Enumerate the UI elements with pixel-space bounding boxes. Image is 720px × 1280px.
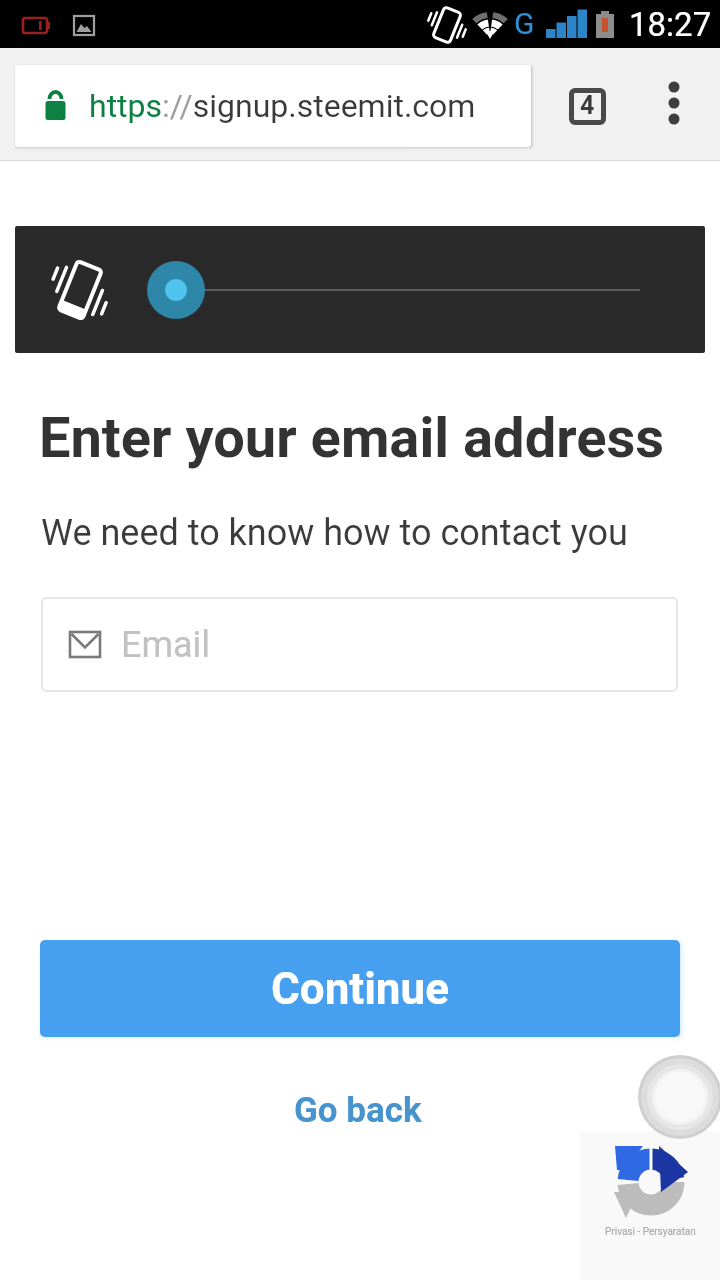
button[interactable]: Tabs, 4 open — [569, 88, 606, 125]
staticText: G — [514, 6, 535, 41]
staticText: 4 — [580, 91, 595, 120]
staticText: https://signup.steemit.com — [89, 87, 476, 125]
button[interactable]: Email — [41, 597, 678, 692]
button[interactable]: Privasi - Persyaratan — [580, 1131, 720, 1280]
staticText: Continue — [271, 963, 449, 1015]
button[interactable]: Ringer mode: vibrate — [15, 226, 705, 353]
staticText: Email — [121, 624, 211, 666]
staticText: 18:27 — [629, 5, 712, 44]
button[interactable]: Go back — [273, 1081, 443, 1139]
staticText: Go back — [294, 1090, 422, 1131]
button[interactable]: https://signup.steemit.com — [15, 65, 531, 147]
button[interactable]: Assistive touch — [638, 1055, 720, 1139]
button[interactable]: Continue — [40, 940, 680, 1037]
staticText: We need to know how to contact you — [41, 512, 628, 554]
button[interactable]: More options — [650, 79, 698, 127]
staticText: Privasi - Persyaratan — [605, 1226, 696, 1238]
staticText: Enter your email address — [39, 405, 665, 471]
